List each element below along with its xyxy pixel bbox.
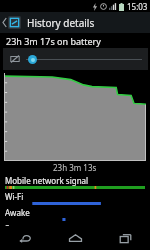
staticText: 23h 3m 13s (53, 162, 97, 173)
staticText: Wi-Fi (5, 191, 24, 202)
button[interactable]: Navigate up (0, 16, 23, 29)
staticText: Mobile network signal (5, 175, 89, 186)
other: Toggle chart (10, 54, 20, 64)
staticText: Screen on (5, 223, 43, 226)
staticText: History details (27, 16, 95, 30)
button[interactable]: Home (50, 226, 100, 250)
button[interactable]: Wi-Fi (0, 191, 150, 207)
button[interactable]: Back (0, 226, 50, 250)
button[interactable]: Recent apps (100, 226, 150, 250)
button[interactable]: Awake (0, 207, 150, 223)
staticText: Awake (5, 207, 30, 218)
staticText: 15:03 (127, 1, 148, 12)
staticText: 23h 3m 17s on battery (6, 35, 101, 47)
button[interactable]: Screen on (0, 223, 150, 226)
button[interactable]: Toggle chart (3, 48, 148, 70)
button[interactable]: Mobile network signal (0, 175, 150, 191)
